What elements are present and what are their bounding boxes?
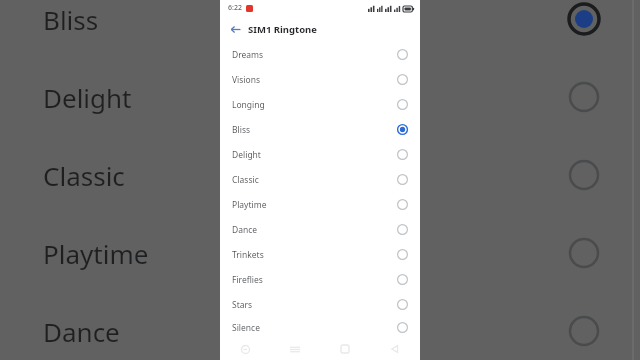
button[interactable]: Playtime: [220, 192, 420, 217]
staticText: Delight: [43, 80, 132, 115]
button[interactable]: Delight: [220, 142, 420, 167]
button[interactable]: Dreams: [220, 42, 420, 67]
button[interactable]: Trinkets: [220, 242, 420, 267]
button[interactable]: Back: [370, 338, 420, 360]
staticText: Classic: [43, 158, 125, 193]
button[interactable]: Home: [320, 338, 370, 360]
staticText: Delight: [232, 149, 397, 161]
staticText: SIM1 Ringtone: [248, 23, 317, 36]
staticText: Dreams: [232, 49, 397, 61]
staticText: Bliss: [43, 2, 99, 37]
staticText: 6:22: [228, 3, 242, 13]
button[interactable]: Back: [226, 20, 244, 38]
button[interactable]: Stars: [220, 292, 420, 317]
button[interactable]: Bliss: [220, 117, 420, 142]
staticText: Dance: [43, 314, 120, 349]
staticText: Fireflies: [232, 274, 397, 286]
button[interactable]: Assistant: [220, 338, 270, 360]
staticText: Playtime: [43, 236, 149, 271]
staticText: Silence: [232, 322, 397, 334]
button[interactable]: Classic: [220, 167, 420, 192]
staticText: Trinkets: [232, 249, 397, 261]
button[interactable]: Dance: [220, 217, 420, 242]
button[interactable]: Recents: [270, 338, 320, 360]
button[interactable]: Longing: [220, 92, 420, 117]
button[interactable]: Fireflies: [220, 267, 420, 292]
button[interactable]: Visions: [220, 67, 420, 92]
staticText: Bliss: [232, 124, 397, 136]
staticText: Visions: [232, 74, 397, 86]
staticText: Playtime: [232, 199, 397, 211]
staticText: Stars: [232, 299, 397, 311]
staticText: Classic: [232, 174, 397, 186]
button[interactable]: Silence: [220, 317, 420, 338]
staticText: Dance: [232, 224, 397, 236]
staticText: Longing: [232, 99, 397, 111]
